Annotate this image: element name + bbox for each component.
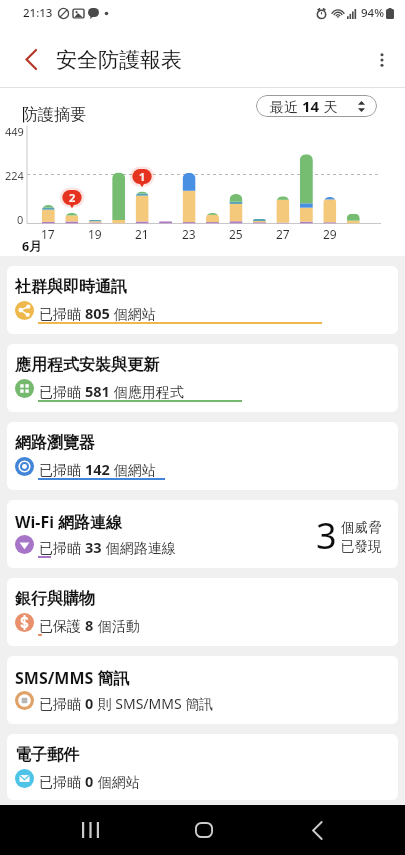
staticText: 21:13 <box>23 5 53 21</box>
button[interactable]: Recents <box>55 805 125 855</box>
staticText: 已發現 <box>341 538 382 555</box>
staticText: 805 <box>85 303 110 323</box>
staticText: 14 <box>302 96 320 116</box>
staticText: 1 <box>139 169 146 184</box>
staticText: 21 <box>135 226 149 242</box>
button[interactable]: Back <box>15 32 47 87</box>
staticText: 17 <box>41 226 55 242</box>
staticText: 個網站 <box>110 460 156 479</box>
staticText: 已掃瞄 <box>39 538 85 557</box>
staticText: 應用程式安裝與更新 <box>15 355 159 375</box>
staticText: 已掃瞄 <box>39 772 85 791</box>
staticText: 224 <box>5 168 24 182</box>
staticText: 已掃瞄 <box>39 694 85 713</box>
staticText: 19 <box>88 226 102 242</box>
staticText: 3 <box>316 511 337 560</box>
button[interactable]: Wi-Fi 網路連線 <box>7 500 398 568</box>
staticText: 581 <box>85 381 110 401</box>
staticText: 個應用程式 <box>110 382 184 401</box>
staticText: 則 SMS/MMS 簡訊 <box>94 694 214 713</box>
staticText: 銀行與購物 <box>15 589 95 609</box>
staticText: 6月 <box>22 238 42 255</box>
staticText: 94% <box>361 5 384 21</box>
button[interactable]: Back <box>282 805 352 855</box>
staticText: 個網路連線 <box>102 538 176 557</box>
staticText: 25 <box>229 226 243 242</box>
button[interactable]: Home <box>169 805 239 855</box>
staticText: 天 <box>320 97 338 116</box>
staticText: SMS/MMS 簡訊 <box>15 667 130 689</box>
staticText: 已掃瞄 <box>39 382 85 401</box>
button[interactable]: 電子郵件 <box>7 734 398 800</box>
staticText: 已保護 <box>39 616 85 635</box>
staticText: 8 <box>85 615 94 635</box>
button[interactable]: More options <box>359 37 405 83</box>
staticText: 已掃瞄 <box>39 304 85 323</box>
button[interactable]: 應用程式安裝與更新 <box>7 344 398 412</box>
staticText: Wi-Fi 網路連線 <box>15 511 123 533</box>
button[interactable]: 社群與即時通訊 <box>7 266 398 334</box>
staticText: 網路瀏覽器 <box>15 433 95 453</box>
staticText: 個威脅 <box>341 519 382 536</box>
staticText: 最近 <box>270 97 302 116</box>
staticText: 個網站 <box>110 304 156 323</box>
staticText: 個網站 <box>94 772 140 791</box>
staticText: 29 <box>323 226 337 242</box>
staticText: 個活動 <box>94 616 140 635</box>
staticText: 142 <box>85 459 110 479</box>
staticText: 防護摘要 <box>22 105 86 125</box>
staticText: 0 <box>85 693 94 713</box>
staticText: 33 <box>85 537 102 557</box>
staticText: 社群與即時通訊 <box>15 277 127 297</box>
staticText: 安全防護報表 <box>56 47 182 73</box>
staticText: 27 <box>276 226 290 242</box>
button[interactable]: SMS/MMS 簡訊 <box>7 656 398 724</box>
staticText: 449 <box>5 124 24 138</box>
staticText: 23 <box>182 226 196 242</box>
button[interactable]: 網路瀏覽器 <box>7 422 398 490</box>
staticText: 0 <box>17 212 24 226</box>
staticText: 2 <box>69 190 76 205</box>
staticText: 已掃瞄 <box>39 460 85 479</box>
button[interactable]: 最近 <box>256 95 377 117</box>
button[interactable]: 銀行與購物 <box>7 578 398 646</box>
staticText: 0 <box>85 771 94 791</box>
staticText: 電子郵件 <box>15 745 79 765</box>
